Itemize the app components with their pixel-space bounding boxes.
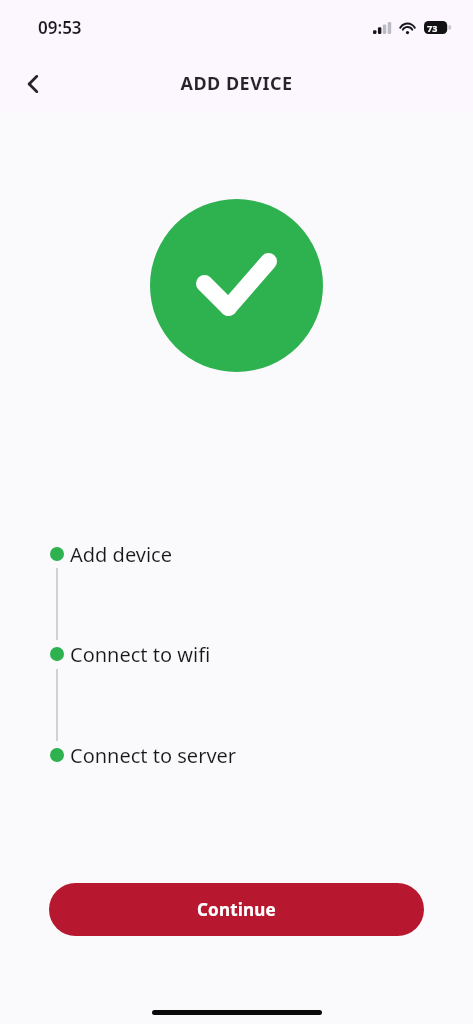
button[interactable]: Back [10,61,56,107]
staticText: 73 [427,22,438,34]
staticText: Continue [197,898,276,921]
staticText: Add device [70,541,172,568]
button[interactable]: Connect to server [0,738,473,772]
staticText: ADD DEVICE [180,71,293,96]
button[interactable]: Add device [0,537,473,571]
button[interactable]: Connect to wifi [0,637,473,671]
staticText: 09:53 [38,16,82,39]
button[interactable]: Continue [49,883,424,936]
staticText: Connect to wifi [70,641,211,668]
staticText: Connect to server [70,742,237,769]
